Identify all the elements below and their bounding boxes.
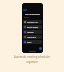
- staticText: Retro: [27, 41, 32, 43]
- staticText: My Schedule: [23, 12, 42, 15]
- button[interactable]: Design review: [23, 25, 42, 29]
- staticText: Standup: [27, 31, 34, 33]
- staticText: Design review: [27, 26, 39, 28]
- button[interactable]: One to one: [23, 35, 42, 39]
- staticText: Morning sync: [27, 21, 38, 23]
- button[interactable]: Standup: [23, 30, 42, 34]
- staticText: organizer: [26, 60, 38, 64]
- staticText: One to one: [27, 36, 36, 38]
- button[interactable]: Add event: [39, 47, 42, 50]
- staticText: Today: [24, 16, 43, 19]
- button[interactable]: Menu: [23, 9, 27, 11]
- staticText: Automatic meeting scheduler: [14, 55, 50, 59]
- button[interactable]: Retro: [23, 40, 42, 44]
- button[interactable]: Morning sync: [23, 20, 42, 24]
